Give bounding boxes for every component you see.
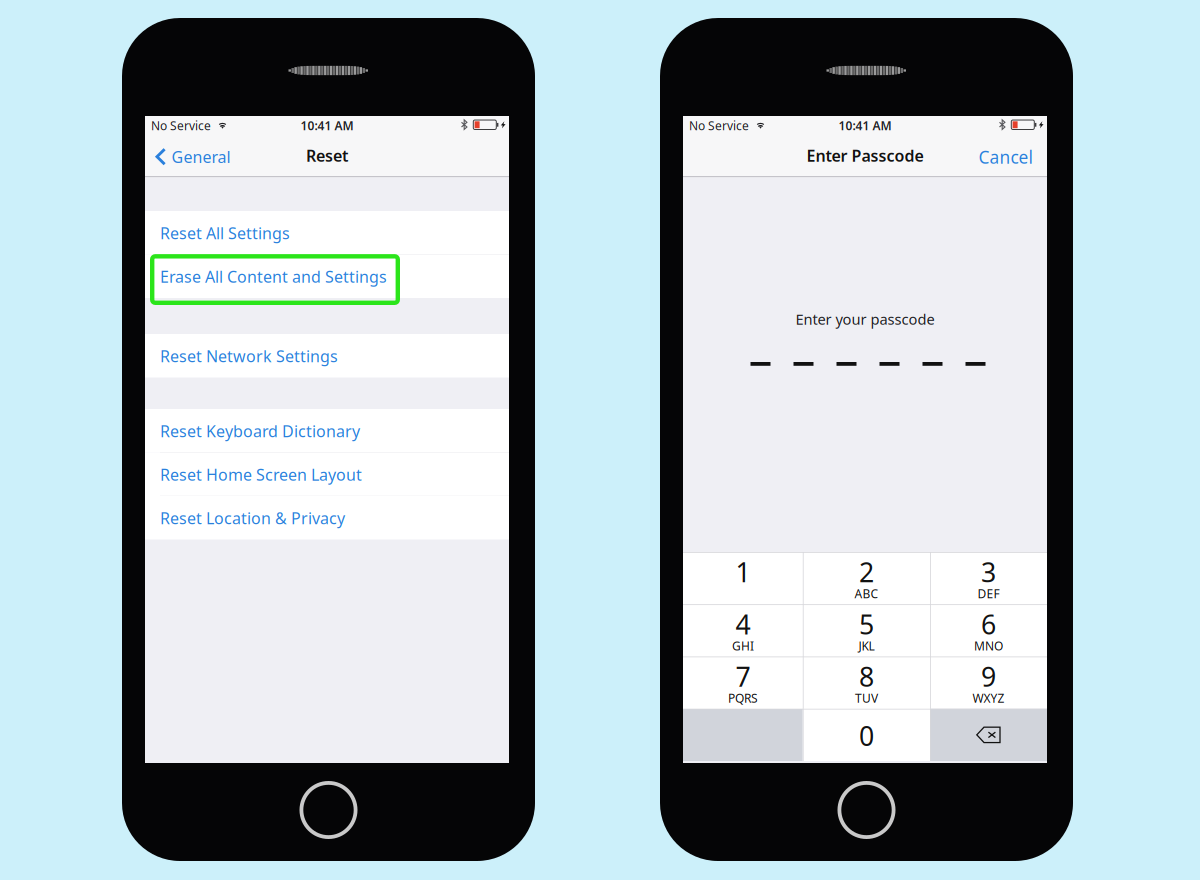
button[interactable]: Cancel (970, 137, 1046, 176)
staticText: TUV (855, 690, 878, 706)
staticText: Erase All Content and Settings (160, 266, 387, 287)
staticText: No Service (151, 118, 211, 133)
button[interactable]: 2 (803, 552, 930, 604)
button[interactable]: 8 (803, 656, 930, 709)
button[interactable]: 3 (930, 552, 1047, 604)
staticText: 4 (735, 606, 750, 642)
button[interactable]: Reset Network Settings (145, 334, 509, 377)
staticText: Enter Passcode (806, 145, 923, 166)
staticText: 10:41 AM (300, 118, 353, 133)
button[interactable]: Reset All Settings (145, 211, 509, 254)
button[interactable]: 6 (930, 604, 1047, 656)
staticText: 1 (735, 554, 750, 590)
staticText: 10:41 AM (838, 118, 891, 133)
staticText: 3 (981, 554, 996, 590)
staticText: MNO (974, 638, 1003, 654)
staticText: General (171, 146, 230, 167)
staticText: 9 (981, 659, 996, 694)
button[interactable]: Delete (930, 709, 1047, 761)
staticText: 0 (859, 718, 874, 753)
staticText: Reset (306, 145, 348, 166)
button[interactable]: 5 (803, 604, 930, 656)
button[interactable]: Reset Location & Privacy (145, 496, 509, 539)
button[interactable]: 0 (803, 709, 930, 761)
staticText: WXYZ (972, 690, 1004, 706)
staticText: GHI (732, 638, 754, 654)
staticText: No Service (689, 118, 749, 133)
button[interactable]: 9 (930, 656, 1047, 709)
button[interactable]: 1 (683, 552, 803, 604)
staticText: Reset Network Settings (160, 345, 338, 367)
button[interactable]: Reset Keyboard Dictionary (145, 409, 509, 452)
staticText: Reset All Settings (160, 222, 290, 244)
button[interactable]: General (145, 137, 250, 176)
staticText: JKL (858, 638, 874, 654)
staticText: PQRS (728, 690, 758, 706)
staticText: 6 (981, 606, 996, 642)
staticText: 5 (859, 606, 874, 642)
staticText: 8 (859, 659, 874, 694)
button[interactable]: 7 (683, 656, 803, 709)
staticText: Reset Keyboard Dictionary (160, 420, 360, 442)
staticText: DEF (977, 585, 999, 601)
staticText: ABC (854, 585, 878, 601)
button[interactable]: Erase All Content and Settings (145, 254, 509, 298)
staticText: Cancel (978, 146, 1032, 169)
staticText: Enter your passcode (795, 309, 934, 329)
staticText: Reset Location & Privacy (160, 507, 345, 529)
staticText: 7 (735, 659, 750, 694)
button[interactable]: 4 (683, 604, 803, 656)
staticText: Reset Home Screen Layout (160, 464, 362, 485)
button[interactable]: Reset Home Screen Layout (145, 452, 509, 496)
staticText: 2 (859, 554, 874, 590)
